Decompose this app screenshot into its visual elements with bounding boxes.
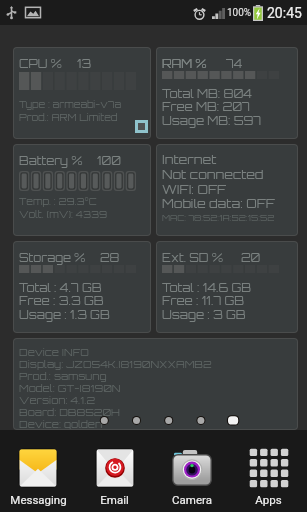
staticText: Internet — [162, 151, 217, 167]
other: Battery charging — [253, 5, 263, 21]
staticText: Not connected — [162, 166, 264, 182]
staticText: RAM % — [162, 56, 207, 71]
staticText: Volt. (mV): 4339 — [19, 208, 107, 220]
staticText: 20:45 — [267, 5, 302, 21]
staticText: Usage : 1.3 GB — [19, 307, 110, 322]
staticText: Email — [100, 493, 129, 506]
staticText: Board: DB8520H — [19, 405, 120, 418]
staticText: Total MB: 804 — [162, 86, 252, 101]
staticText: MAC: 78:52:1A:52:15:52 — [162, 212, 275, 223]
button[interactable]: Device INFO — [14, 339, 297, 429]
staticText: Prod.: ARM Limited — [19, 111, 118, 123]
staticText: Free MB: 207 — [162, 99, 250, 114]
button[interactable]: RAM % — [157, 48, 297, 138]
staticText: Temp. : 29.3°C — [19, 195, 97, 207]
staticText: Free : 11.7 GB — [162, 293, 245, 308]
other: Screenshot captured — [25, 6, 41, 19]
other: USB connected — [5, 5, 18, 20]
staticText: Messaging — [10, 493, 67, 506]
button[interactable]: Messaging — [0, 430, 76, 512]
staticText: Usage : 3 GB — [162, 307, 246, 322]
staticText: Model: GT-I8190N — [19, 381, 121, 394]
staticText: 100 — [97, 153, 121, 168]
staticText: CPU % — [19, 56, 62, 71]
button[interactable]: CPU % — [14, 48, 150, 138]
button[interactable]: Apps — [230, 430, 307, 512]
staticText: Total : 4.7 GB — [19, 280, 102, 295]
button[interactable]: Email — [76, 430, 153, 512]
staticText: 28 — [100, 250, 120, 265]
staticText: Storage % — [19, 250, 86, 265]
button[interactable]: Ext. SD % — [157, 242, 297, 332]
staticText: Camera — [172, 493, 212, 506]
button[interactable]: Battery % — [14, 145, 150, 235]
other: Alarm set — [193, 7, 206, 20]
staticText: Display: JZO54K.I8190NXXAMB2 — [19, 357, 212, 370]
staticText: Total : 14.6 GB — [162, 280, 252, 295]
staticText: Mobile data: OFF — [162, 195, 275, 211]
other: Signal strength — [212, 8, 225, 19]
button[interactable]: Camera — [153, 430, 230, 512]
staticText: Version: 4.1.2 — [19, 393, 96, 406]
staticText: Free : 3.3 GB — [19, 293, 104, 308]
button[interactable]: Internet — [157, 145, 297, 235]
button[interactable]: Storage % — [14, 242, 150, 332]
staticText: WIFI: OFF — [162, 181, 227, 197]
staticText: Apps — [255, 493, 282, 506]
staticText: Battery % — [19, 153, 83, 168]
staticText: Ext. SD % — [162, 250, 223, 265]
staticText: 100% — [227, 7, 252, 19]
staticText: 13 — [77, 56, 92, 71]
staticText: Usage MB: 597 — [162, 113, 262, 128]
staticText: RAM % — [162, 56, 207, 71]
staticText: 20 — [241, 250, 261, 265]
staticText: Type : armeabi-v7a — [19, 98, 122, 110]
staticText: Prod.: samsung — [19, 369, 107, 382]
staticText: 74 — [226, 56, 243, 71]
staticText: Device: golden — [19, 417, 103, 429]
staticText: Device INFO — [19, 345, 89, 358]
